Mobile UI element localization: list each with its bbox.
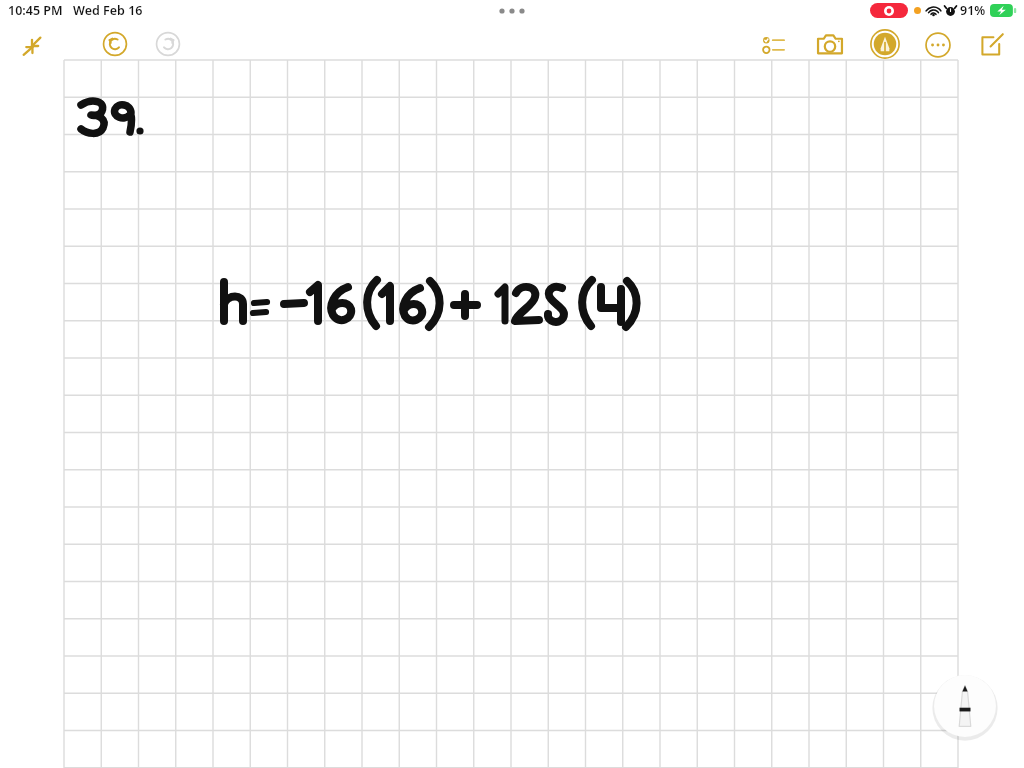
button[interactable]: Checklist <box>753 24 795 66</box>
button[interactable]: Redo <box>148 24 188 64</box>
button[interactable]: More options <box>917 24 959 66</box>
staticText: Wed Feb 16 <box>73 2 143 19</box>
staticText: 91% <box>960 2 986 19</box>
button[interactable]: Undo <box>95 24 135 64</box>
staticText: 10:45 PM <box>8 2 63 19</box>
button[interactable]: Camera <box>809 24 851 66</box>
button[interactable]: Pen tool <box>864 23 906 65</box>
button[interactable]: Stylus tool <box>931 672 999 740</box>
button[interactable]: New note <box>971 24 1013 66</box>
button[interactable]: Collapse <box>12 26 52 66</box>
